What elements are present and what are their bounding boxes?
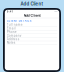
button[interactable]: Phone — [5, 30, 59, 34]
button[interactable]: Email — [5, 27, 59, 30]
staticText: Add Client — [23, 13, 40, 18]
button[interactable]: Company — [5, 34, 59, 38]
staticText: ••• — [54, 10, 57, 13]
staticText: Full name — [7, 23, 23, 26]
staticText: Add Client — [20, 1, 43, 7]
button[interactable]: Full name — [5, 23, 59, 27]
button[interactable]: Notes — [5, 41, 59, 45]
staticText: Notes — [7, 41, 16, 44]
staticText: CLIENT DETAILS — [7, 19, 32, 22]
staticText: Email — [7, 27, 16, 30]
staticText: Address — [7, 37, 20, 41]
button[interactable]: Address — [5, 38, 59, 41]
staticText: 9:41 — [7, 10, 13, 13]
staticText: Phone — [7, 30, 17, 34]
staticText: Company — [7, 34, 22, 37]
